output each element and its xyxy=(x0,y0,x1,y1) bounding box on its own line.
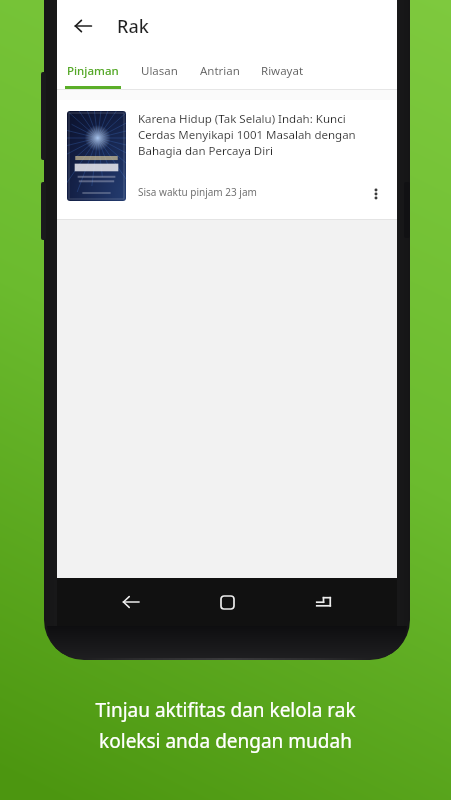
button[interactable]: Home xyxy=(205,580,249,624)
button[interactable]: Ulasan xyxy=(129,52,189,89)
button[interactable]: Back xyxy=(109,580,153,624)
staticText: Tinjau aktifitas dan kelola rak xyxy=(95,697,356,723)
staticText: Karena Hidup (Tak Selalu) Indah: Kunci C… xyxy=(138,111,361,159)
staticText: Pinjaman xyxy=(67,63,119,79)
button[interactable]: Antrian xyxy=(189,52,251,89)
button[interactable]: More options xyxy=(361,179,391,209)
staticText: koleksi anda dengan mudah xyxy=(99,728,352,754)
button[interactable]: Pinjaman xyxy=(57,52,129,89)
staticText: Riwayat xyxy=(261,63,304,79)
button[interactable]: Back xyxy=(63,6,103,46)
staticText: Antrian xyxy=(200,63,240,79)
button[interactable]: Karena Hidup (Tak Selalu) Indah: Kunci C… xyxy=(57,100,397,219)
staticText: Ulasan xyxy=(141,63,178,79)
staticText: Rak xyxy=(117,14,149,39)
staticText: Sisa waktu pinjam 23 jam xyxy=(138,185,257,199)
button[interactable]: Riwayat xyxy=(251,52,313,89)
button[interactable]: Recent apps xyxy=(301,580,345,624)
